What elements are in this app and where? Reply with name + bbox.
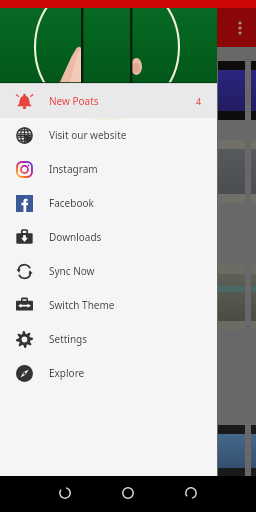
staticText: New Poats <box>49 94 99 108</box>
button[interactable] <box>251 140 256 203</box>
button[interactable] <box>119 61 146 120</box>
button[interactable] <box>251 425 256 477</box>
button[interactable] <box>251 265 256 330</box>
staticText: 4 <box>196 95 202 107</box>
button[interactable] <box>20 140 47 203</box>
button[interactable]: Visit our website <box>0 118 217 152</box>
button[interactable] <box>218 265 245 330</box>
button[interactable]: Back <box>51 479 79 507</box>
staticText: Visit our website <box>49 128 127 142</box>
button[interactable] <box>86 425 113 477</box>
button[interactable] <box>152 61 179 120</box>
button[interactable]: Recents <box>177 479 205 507</box>
button[interactable]: Explore <box>0 356 217 390</box>
button[interactable] <box>53 61 80 120</box>
button[interactable]: Sync Now <box>0 254 217 288</box>
button[interactable]: Downloads <box>0 220 217 254</box>
button[interactable] <box>86 140 113 203</box>
staticText: Instagram <box>49 162 98 176</box>
button[interactable] <box>218 425 245 477</box>
button[interactable] <box>185 425 212 477</box>
button[interactable]: More options <box>231 19 249 37</box>
button[interactable] <box>20 265 47 330</box>
button[interactable] <box>119 425 146 477</box>
staticText: Settings <box>49 332 88 346</box>
staticText: Downloads <box>49 230 102 244</box>
button[interactable] <box>218 140 245 203</box>
staticText: Facebook <box>49 196 94 210</box>
button[interactable] <box>53 140 80 203</box>
button[interactable] <box>152 425 179 477</box>
button[interactable] <box>86 61 113 120</box>
button[interactable] <box>53 265 80 330</box>
button[interactable]: Instagram <box>0 152 217 186</box>
staticText: Sync Now <box>49 264 95 278</box>
button[interactable] <box>20 425 47 477</box>
button[interactable]: Switch Theme <box>0 288 217 322</box>
staticText: Explore <box>49 366 85 380</box>
button[interactable] <box>218 61 245 120</box>
staticText: Switch Theme <box>49 298 115 312</box>
button[interactable]: Facebook <box>0 186 217 220</box>
button[interactable]: New Poats <box>0 84 217 118</box>
button[interactable] <box>251 61 256 120</box>
button[interactable] <box>53 425 80 477</box>
button[interactable] <box>86 265 113 330</box>
button[interactable] <box>185 61 212 120</box>
button[interactable] <box>20 61 47 120</box>
button[interactable]: Settings <box>0 322 217 356</box>
button[interactable]: Home <box>114 479 142 507</box>
